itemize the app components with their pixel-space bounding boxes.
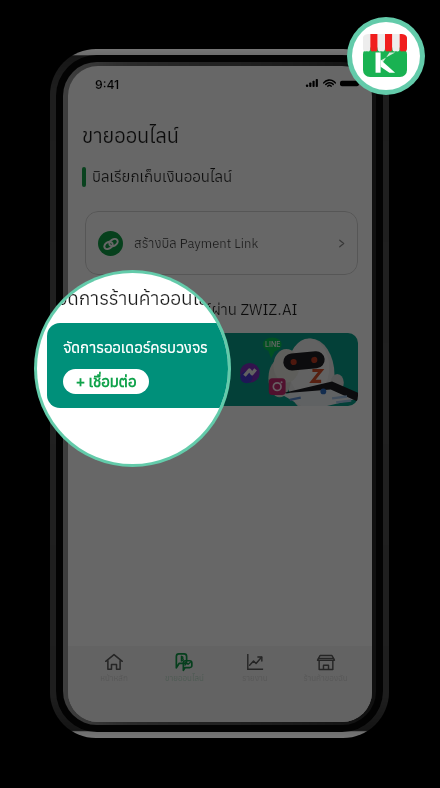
button[interactable]: App logo — [347, 17, 425, 95]
staticText: บิลเรียกเก็บเงินออนไลน์ — [92, 167, 233, 187]
button[interactable]: ขายออนไลน์ — [149, 646, 219, 722]
staticText: ขายออนไลน์ — [82, 122, 179, 148]
staticText: สร้างบิล Payment Link — [134, 235, 259, 252]
staticText: LINE — [265, 340, 281, 348]
button[interactable]: สร้างบิล Payment Link — [85, 211, 358, 275]
staticText: จัดการร้านค้าออนไลน์ผ่าน — [57, 286, 228, 311]
button[interactable]: LINE — [85, 333, 358, 406]
button[interactable]: รายงาน — [219, 646, 290, 722]
button[interactable]: + เชื่อมต่อ — [63, 369, 149, 394]
button[interactable]: ร้านค้าของฉัน — [290, 646, 361, 722]
button[interactable]: หน้าหลัก — [79, 646, 149, 722]
button[interactable]: จัดการออเดอร์ครบวงจร — [47, 323, 228, 408]
staticText: หน้าหลัก — [100, 673, 128, 683]
staticText: + เชื่อมต่อ — [76, 372, 137, 392]
staticText: จัดการออเดอร์ครบวงจร — [63, 338, 208, 358]
staticText: 9:41 — [95, 77, 120, 92]
staticText: ขายออนไลน์ — [165, 673, 204, 683]
staticText: จัดการร้านค้าออนไลน์ผ่าน ZWIZ.AI — [82, 300, 298, 320]
